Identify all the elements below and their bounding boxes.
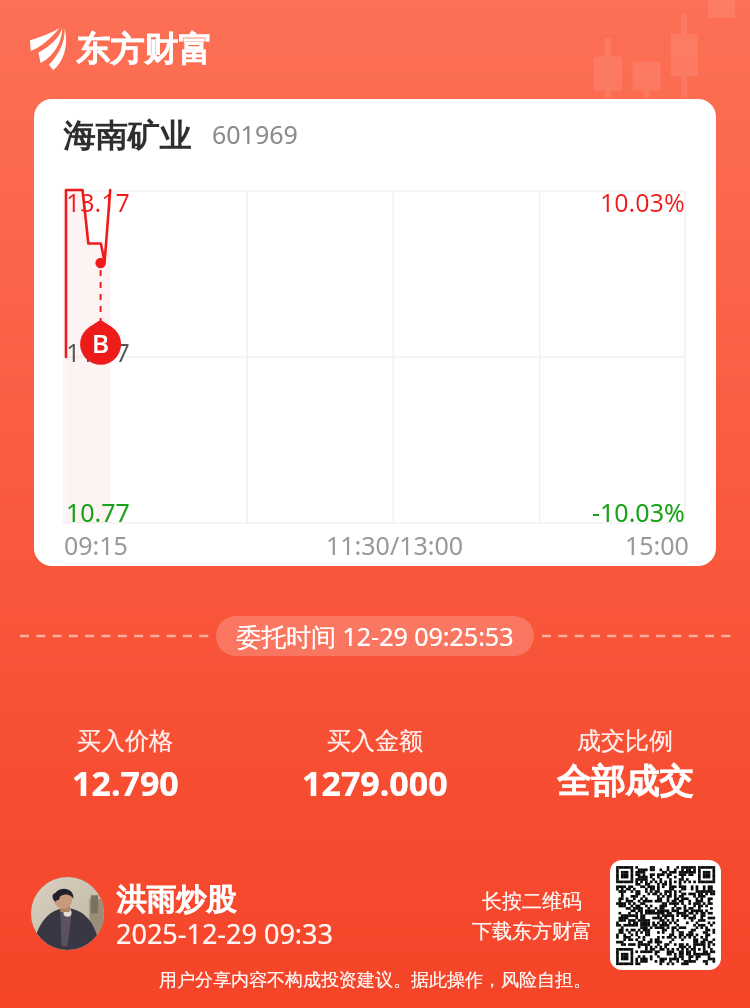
staticText: 15:00 <box>625 528 689 562</box>
staticText: 海南矿业 <box>63 116 191 156</box>
staticText: 10.77 <box>66 495 130 529</box>
staticText: 长按二维码 <box>482 889 582 914</box>
staticText: 601969 <box>212 117 298 151</box>
staticText: 10.03% <box>600 185 685 219</box>
staticText: 2025-12-29 09:33 <box>116 915 333 952</box>
other: QR code <box>610 860 721 970</box>
staticText: 11.97 <box>66 335 130 369</box>
button[interactable]: 委托时间 12-29 09:25:53 <box>216 616 534 656</box>
staticText: 1279.000 <box>302 760 448 806</box>
staticText: 12.790 <box>72 760 179 806</box>
staticText: 用户分享内容不构成投资建议。据此操作，风险自担。 <box>159 969 591 992</box>
staticText: 买入金额 <box>327 726 423 756</box>
staticText: B <box>92 325 110 360</box>
staticText: 全部成交 <box>557 760 693 803</box>
staticText: 委托时间 12-29 09:25:53 <box>236 619 514 653</box>
staticText: 下载东方财富 <box>472 919 592 944</box>
staticText: 11:30/13:00 <box>326 528 464 562</box>
staticText: 13.17 <box>66 185 130 219</box>
staticText: 成交比例 <box>577 726 673 756</box>
staticText: -10.03% <box>592 495 685 529</box>
staticText: 洪雨炒股 <box>116 881 236 919</box>
staticText: 09:15 <box>64 528 128 562</box>
staticText: 买入价格 <box>77 726 173 756</box>
staticText: 东方财富 <box>76 28 212 71</box>
